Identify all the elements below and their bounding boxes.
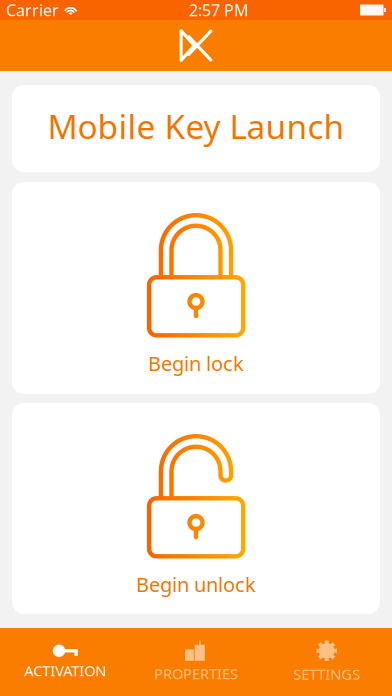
staticText: Begin unlock <box>136 571 256 598</box>
button[interactable]: PROPERTIES <box>131 633 261 691</box>
staticText: SETTINGS <box>293 664 360 684</box>
staticText: 2:57 PM <box>189 0 249 21</box>
button[interactable]: SETTINGS <box>261 632 392 692</box>
button[interactable]: ACTIVATION <box>0 636 131 688</box>
staticText: Mobile Key Launch <box>47 104 344 148</box>
button[interactable]: Begin lock <box>12 182 380 394</box>
button[interactable]: Begin unlock <box>12 403 380 614</box>
staticText: PROPERTIES <box>154 664 238 683</box>
staticText: Begin lock <box>148 350 244 377</box>
staticText: ACTIVATION <box>24 661 106 680</box>
button[interactable]: Home <box>179 29 212 62</box>
staticText: Carrier <box>6 0 59 21</box>
